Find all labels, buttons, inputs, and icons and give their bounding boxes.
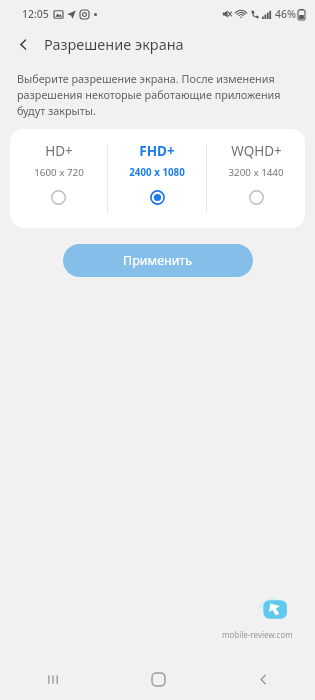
staticText: Выберите разрешение экрана. После измене… [17, 71, 301, 118]
button[interactable]: Применить [63, 244, 253, 277]
staticText: HD+ [45, 142, 73, 160]
button[interactable]: Back [10, 31, 36, 57]
staticText: Разрешение экрана [44, 34, 184, 54]
button[interactable]: Home [123, 658, 193, 700]
button[interactable]: HD+ [10, 129, 107, 205]
staticText: mobile-review.com [222, 629, 293, 640]
staticText: 1600 x 720 [34, 166, 84, 179]
button[interactable]: Back [228, 658, 298, 700]
staticText: 46% [275, 7, 296, 21]
staticText: FHD+ [139, 142, 175, 160]
staticText: WQHD+ [231, 142, 282, 160]
button[interactable]: Recents [18, 658, 88, 700]
button[interactable]: FHD+ [108, 129, 206, 205]
staticText: 12:05 [22, 7, 49, 21]
staticText: Применить [123, 252, 193, 269]
staticText: 2400 x 1080 [129, 166, 185, 179]
staticText: 3200 x 1440 [228, 166, 284, 179]
button[interactable]: WQHD+ [207, 129, 305, 205]
